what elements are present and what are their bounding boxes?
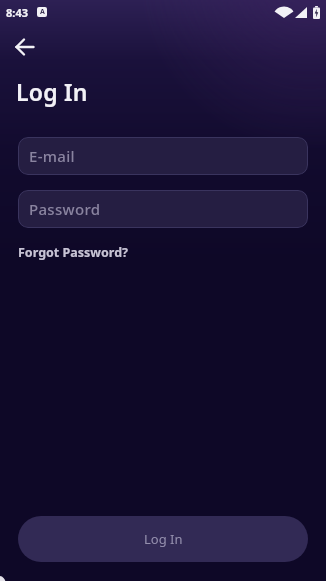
staticText: Log In — [16, 76, 88, 107]
staticText: 8:43 — [6, 5, 28, 20]
staticText: Log In — [144, 530, 183, 548]
staticText: Password — [29, 199, 101, 219]
button[interactable]: Password — [18, 190, 308, 228]
button[interactable]: Log In — [18, 516, 308, 562]
button[interactable] — [5, 27, 45, 67]
button[interactable]: Forgot Password? — [18, 244, 129, 261]
staticText: A — [40, 7, 45, 17]
button[interactable]: E-mail — [18, 137, 308, 175]
staticText: E-mail — [29, 146, 75, 166]
